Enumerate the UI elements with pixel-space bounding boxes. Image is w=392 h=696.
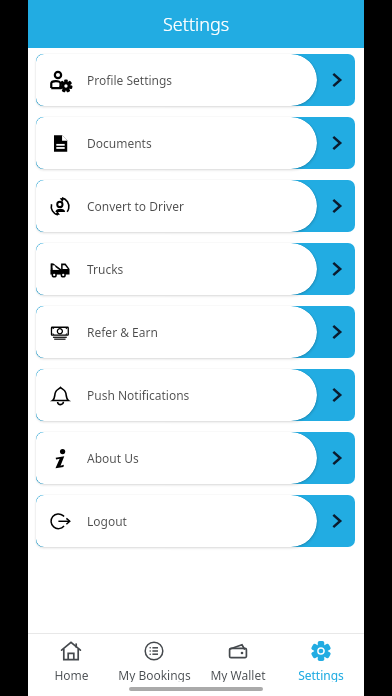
button[interactable]: Settings — [280, 634, 362, 682]
button[interactable]: Push Notifications — [36, 369, 355, 421]
button[interactable]: My Wallet — [197, 634, 279, 682]
staticText: Logout — [87, 513, 127, 529]
button[interactable]: Documents — [36, 117, 355, 169]
staticText: Home — [54, 667, 89, 682]
staticText: About Us — [87, 450, 139, 466]
button[interactable]: Home — [30, 634, 112, 682]
other: Open Refer & Earn — [329, 324, 345, 340]
other: Open Documents — [329, 135, 345, 151]
button[interactable]: Convert to Driver — [36, 180, 355, 232]
other: Open Logout — [329, 513, 345, 529]
staticText: Convert to Driver — [87, 198, 184, 214]
staticText: Push Notifications — [87, 387, 190, 403]
button[interactable]: About Us — [36, 432, 355, 484]
button[interactable]: Trucks — [36, 243, 355, 295]
staticText: Trucks — [87, 261, 124, 277]
staticText: Refer & Earn — [87, 324, 158, 340]
button[interactable]: My Bookings — [113, 634, 195, 682]
staticText: Settings — [298, 667, 344, 682]
other: Open Push Notifications — [329, 387, 345, 403]
other: Open About Us — [329, 450, 345, 466]
other: Open Profile Settings — [329, 72, 345, 88]
staticText: Settings — [163, 12, 230, 37]
button[interactable]: Refer & Earn — [36, 306, 355, 358]
staticText: My Wallet — [210, 667, 266, 682]
button[interactable]: Logout — [36, 495, 355, 547]
button[interactable]: Profile Settings — [36, 54, 355, 106]
staticText: Profile Settings — [87, 72, 173, 88]
staticText: Documents — [87, 135, 152, 151]
staticText: My Bookings — [118, 667, 191, 682]
other: Open Convert to Driver — [329, 198, 345, 214]
other: Open Trucks — [329, 261, 345, 277]
